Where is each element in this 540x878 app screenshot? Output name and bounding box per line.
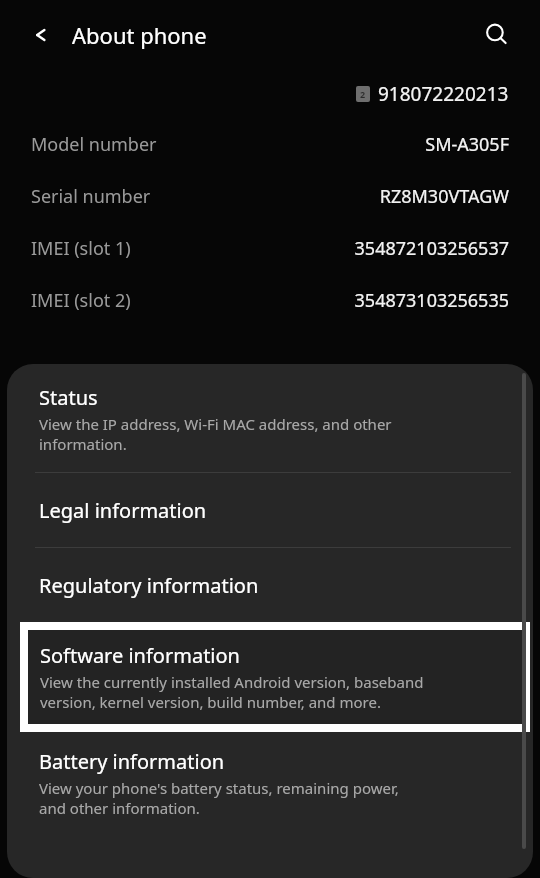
button[interactable]: Status (7, 364, 533, 472)
staticText: RZ8M30VTAGW (379, 184, 509, 209)
staticText: 354872103256537 (354, 236, 509, 261)
button[interactable]: Serial number (0, 170, 540, 222)
staticText: IMEI (slot 2) (31, 288, 131, 313)
staticText: Status (39, 384, 98, 411)
staticText: Model number (31, 132, 157, 157)
staticText: 2 (360, 88, 366, 100)
button[interactable]: IMEI (slot 1) (0, 222, 540, 274)
button[interactable]: Model number (0, 118, 540, 170)
staticText: View the IP address, Wi-Fi MAC address, … (39, 414, 392, 454)
staticText: Serial number (31, 184, 151, 209)
button[interactable]: Software information (28, 630, 522, 724)
button[interactable]: 2 (0, 70, 540, 118)
button[interactable]: Back (18, 11, 66, 59)
staticText: 918072220213 (378, 81, 509, 107)
button[interactable]: Battery information (7, 732, 533, 836)
staticText: 354873103256535 (354, 288, 509, 313)
staticText: Legal information (39, 497, 207, 524)
staticText: SM-A305F (425, 132, 509, 157)
staticText: Regulatory information (39, 572, 259, 599)
button[interactable]: IMEI (slot 2) (0, 274, 540, 326)
staticText: View the currently installed Android ver… (40, 672, 424, 712)
staticText: View your phone's battery status, remain… (39, 778, 399, 818)
staticText: IMEI (slot 1) (31, 236, 131, 261)
staticText: Software information (40, 642, 240, 669)
staticText: About phone (72, 20, 207, 50)
button[interactable]: Search (473, 11, 521, 59)
staticText: Battery information (39, 748, 225, 775)
button[interactable]: Regulatory information (7, 548, 533, 622)
button[interactable]: Legal information (7, 473, 533, 547)
